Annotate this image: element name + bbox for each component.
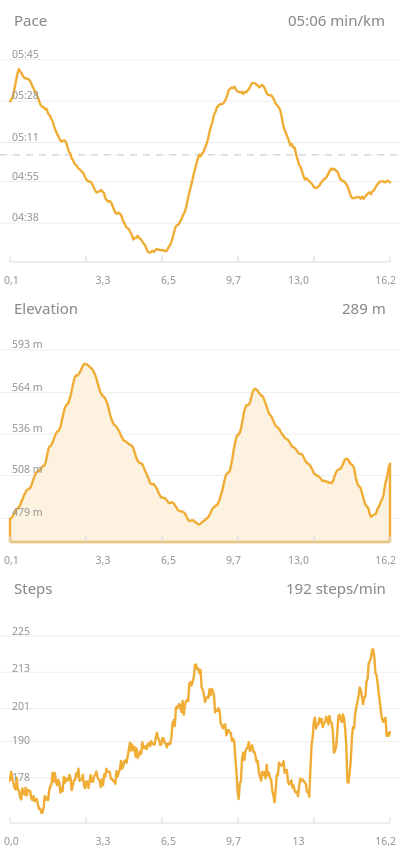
button[interactable]: Elevation <box>0 288 400 324</box>
staticText: 05:45 <box>12 47 39 61</box>
staticText: 289 m <box>342 298 386 318</box>
staticText: 536 m <box>12 421 43 435</box>
staticText: 16,2 <box>331 834 396 848</box>
staticText: 192 steps/min <box>286 578 386 598</box>
staticText: 3,3 <box>70 834 136 848</box>
staticText: 13,0 <box>266 273 331 287</box>
staticText: 593 m <box>12 337 43 351</box>
staticText: Pace <box>14 10 48 30</box>
staticText: 6,5 <box>136 273 201 287</box>
staticText: 13 <box>266 834 331 848</box>
staticText: Elevation <box>14 298 79 318</box>
staticText: 16,2 <box>331 273 396 287</box>
button[interactable]: Pace <box>0 0 400 36</box>
staticText: 6,5 <box>136 553 201 567</box>
staticText: 225 <box>12 624 31 638</box>
staticText: 04:55 <box>12 169 39 183</box>
staticText: 9,7 <box>201 834 266 848</box>
staticText: 05:06 min/km <box>288 10 386 30</box>
button[interactable]: Steps <box>0 568 400 604</box>
staticText: 6,5 <box>136 834 201 848</box>
staticText: 178 <box>12 770 31 784</box>
staticText: 0,0 <box>4 834 70 848</box>
staticText: 16,2 <box>331 553 396 567</box>
staticText: 508 m <box>12 462 43 476</box>
staticText: 479 m <box>12 505 43 519</box>
staticText: 05:28 <box>12 88 39 102</box>
staticText: 190 <box>12 733 31 747</box>
staticText: 564 m <box>12 380 43 394</box>
staticText: 3,3 <box>70 273 136 287</box>
staticText: 05:11 <box>12 130 39 144</box>
staticText: Steps <box>14 578 53 598</box>
staticText: 0,1 <box>4 273 70 287</box>
staticText: 213 <box>12 661 31 675</box>
staticText: 0,1 <box>4 553 70 567</box>
staticText: 04:38 <box>12 210 39 224</box>
staticText: 9,7 <box>201 553 266 567</box>
staticText: 9,7 <box>201 273 266 287</box>
staticText: 3,3 <box>70 553 136 567</box>
staticText: 13,0 <box>266 553 331 567</box>
staticText: 201 <box>12 699 31 713</box>
